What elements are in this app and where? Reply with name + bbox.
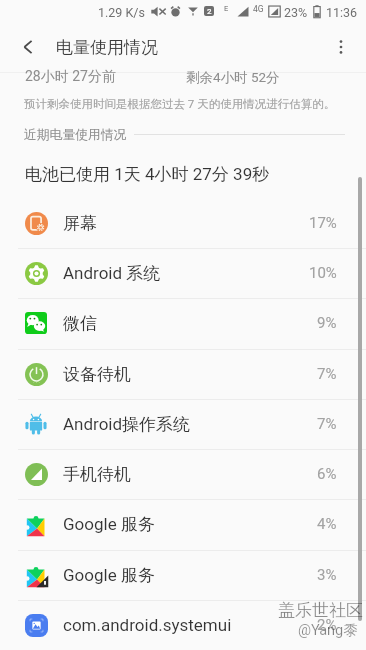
button[interactable]: 微信 bbox=[0, 298, 366, 348]
staticText: 盖乐世社区 bbox=[278, 600, 363, 621]
button[interactable]: Android 系统 bbox=[0, 248, 366, 298]
button[interactable]: Google 服务 bbox=[0, 550, 366, 600]
staticText: 6% bbox=[317, 465, 337, 483]
staticText: 微信 bbox=[63, 313, 97, 334]
staticText: 屏幕 bbox=[63, 213, 97, 234]
staticText: 2 bbox=[207, 7, 212, 16]
staticText: 17% bbox=[309, 214, 337, 232]
staticText: 4% bbox=[317, 515, 337, 533]
staticText: 手机待机 bbox=[63, 464, 131, 485]
staticText: 预计剩余使用时间是根据您过去 7 天的使用情况进行估算的。 bbox=[24, 97, 336, 111]
staticText: 28小时 27分前 bbox=[25, 68, 116, 86]
staticText: E bbox=[224, 4, 229, 13]
staticText: 3% bbox=[317, 566, 337, 584]
staticText: 剩余4小时 52分 bbox=[186, 69, 280, 86]
staticText: Google 服务 bbox=[63, 514, 155, 535]
staticText: 9% bbox=[317, 314, 337, 332]
staticText: 电池已使用 1天 4小时 27分 39秒 bbox=[25, 164, 270, 185]
button[interactable]: com.android.systemui bbox=[0, 600, 366, 650]
staticText: 近期电量使用情况 bbox=[24, 127, 127, 143]
button[interactable]: 手机待机 bbox=[0, 449, 366, 499]
button[interactable]: More options bbox=[325, 31, 357, 63]
staticText: 设备待机 bbox=[63, 364, 131, 385]
staticText: Android操作系统 bbox=[63, 414, 191, 435]
staticText: 7% bbox=[317, 365, 337, 383]
staticText: 电量使用情况 bbox=[56, 37, 158, 58]
staticText: @Yang黍 bbox=[298, 621, 358, 639]
staticText: 10% bbox=[309, 264, 337, 282]
staticText: 23% bbox=[284, 5, 308, 20]
button[interactable]: 设备待机 bbox=[0, 349, 366, 399]
staticText: Android 系统 bbox=[63, 263, 161, 284]
button[interactable]: 屏幕 bbox=[0, 198, 366, 248]
button[interactable]: Google 服务 bbox=[0, 499, 366, 549]
staticText: 1.29 K/s bbox=[98, 5, 145, 20]
staticText: com.android.systemui bbox=[63, 615, 232, 635]
staticText: 2% bbox=[317, 616, 337, 634]
button[interactable]: Back bbox=[12, 31, 44, 63]
staticText: 4G bbox=[253, 4, 264, 14]
staticText: 11:36 bbox=[326, 5, 358, 20]
button[interactable]: Android操作系统 bbox=[0, 399, 366, 449]
staticText: 7% bbox=[317, 415, 337, 433]
staticText: Google 服务 bbox=[63, 565, 155, 586]
